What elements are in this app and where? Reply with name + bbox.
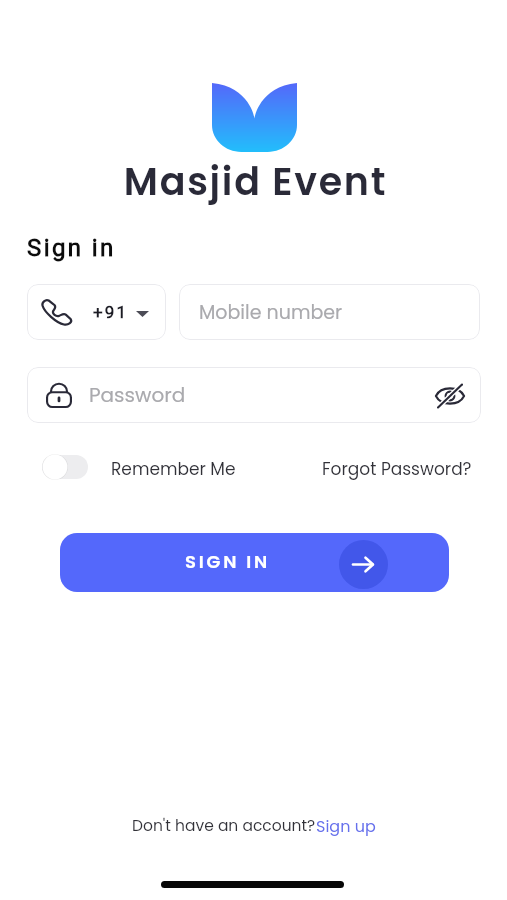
button[interactable]: Password xyxy=(27,367,481,423)
button[interactable] xyxy=(42,455,88,479)
staticText: Masjid Event xyxy=(2,155,507,208)
button[interactable]: Forgot Password? xyxy=(322,457,472,481)
button[interactable]: SIGN IN xyxy=(60,533,449,592)
button[interactable]: +91 xyxy=(27,284,166,340)
staticText: Sign in xyxy=(27,234,116,262)
button[interactable]: Show password xyxy=(427,372,473,418)
button[interactable]: Mobile number xyxy=(179,284,480,340)
staticText: SIGN IN xyxy=(185,549,271,574)
button[interactable]: Sign up xyxy=(316,815,376,837)
staticText: Mobile number xyxy=(199,299,343,326)
staticText: +91 xyxy=(93,302,129,322)
staticText: Password xyxy=(89,381,427,409)
button[interactable]: Remember Me xyxy=(111,457,236,481)
staticText: Don't have an account? xyxy=(132,815,316,837)
